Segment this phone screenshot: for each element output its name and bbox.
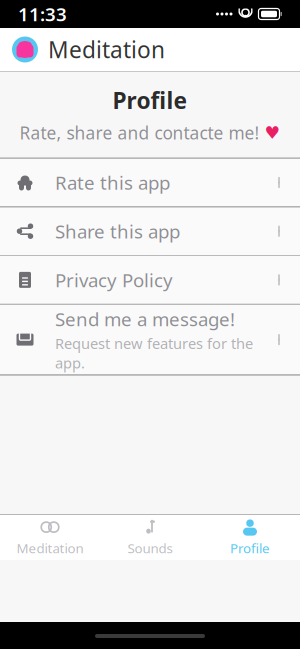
button[interactable]: Sounds [100,515,200,560]
button[interactable]: Meditation [0,515,100,560]
button[interactable]: Privacy Policy [0,256,300,305]
staticText: Privacy Policy [55,267,173,292]
staticText: ♥ [264,123,280,143]
button[interactable]: Profile [200,515,300,560]
staticText: Rate this app [55,170,170,195]
button[interactable]: Send me a message! [0,305,300,375]
staticText: Send me a message! [55,307,235,331]
staticText: Sounds [127,539,172,557]
staticText: Meditation [16,539,83,557]
staticText: 11:33 [18,2,67,26]
staticText: Request new features for the app. [55,333,253,372]
staticText: Profile [112,85,187,115]
staticText: Meditation [48,34,165,64]
staticText: Share this app [55,219,180,244]
staticText: Rate, share and contacte me! [19,121,259,144]
button[interactable]: Rate this app [0,158,300,207]
staticText: Profile [230,539,270,557]
button[interactable]: Share this app [0,207,300,256]
